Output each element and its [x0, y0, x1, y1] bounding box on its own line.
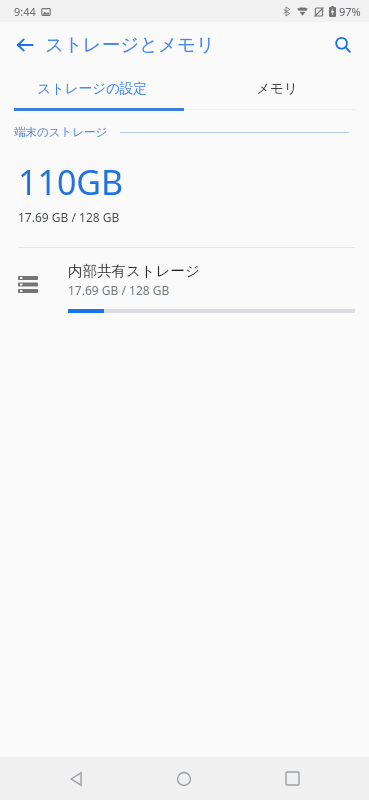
button[interactable]: Back: [7, 27, 43, 63]
button[interactable]: Home: [161, 757, 207, 800]
button[interactable]: Recent apps: [269, 757, 315, 800]
staticText: 17.69 GB / 128 GB: [68, 282, 170, 298]
button[interactable]: Search: [325, 27, 361, 63]
button[interactable]: 内部共有ストレージ: [0, 248, 369, 318]
staticText: 17.69 GB / 128 GB: [18, 209, 120, 225]
button[interactable]: Back: [53, 757, 99, 800]
button[interactable]: ストレージの設定: [0, 68, 184, 108]
staticText: 内部共有ストレージ: [68, 262, 200, 280]
staticText: 端末のストレージ: [14, 125, 108, 139]
button[interactable]: メモリ: [184, 68, 369, 108]
staticText: 97%: [339, 4, 361, 19]
staticText: 9:44: [14, 4, 36, 19]
staticText: ストレージとメモリ: [45, 33, 215, 56]
staticText: メモリ: [256, 80, 298, 97]
staticText: ストレージの設定: [37, 80, 147, 97]
staticText: 110GB: [18, 159, 124, 205]
